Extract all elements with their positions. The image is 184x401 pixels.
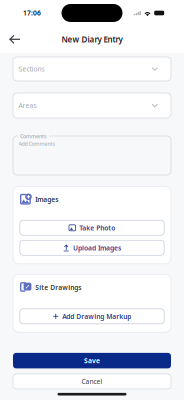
button[interactable]: Cancel — [13, 374, 171, 389]
button[interactable]: Back — [4, 28, 26, 50]
staticText: Areas — [18, 101, 36, 110]
button[interactable]: Upload Images — [20, 240, 164, 255]
button[interactable]: Add Drawing Markup — [20, 309, 164, 324]
staticText: Save — [84, 356, 100, 365]
staticText: Add Comments — [18, 140, 55, 147]
staticText: Comments — [20, 132, 47, 140]
staticText: Sections — [18, 64, 44, 74]
staticText: Take Photo — [79, 223, 115, 232]
staticText: Images — [35, 195, 58, 204]
staticText: New Diary Entry — [61, 34, 122, 45]
button[interactable]: Save — [13, 353, 171, 368]
button[interactable]: Areas — [13, 93, 171, 118]
button[interactable]: Take Photo — [20, 220, 164, 235]
staticText: Upload Images — [73, 243, 121, 252]
staticText: Site Drawings — [35, 283, 81, 292]
staticText: Add Drawing Markup — [62, 312, 131, 321]
staticText: Cancel — [81, 377, 102, 386]
button[interactable]: Sections — [13, 57, 171, 81]
staticText: 17:06 — [23, 8, 41, 18]
